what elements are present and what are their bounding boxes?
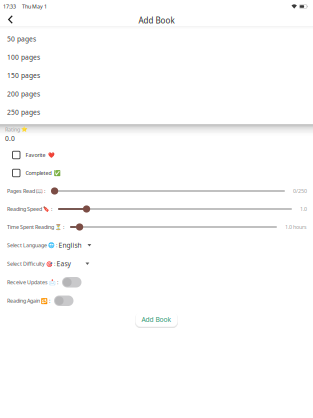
button[interactable]: Back: [0, 13, 22, 26]
staticText: Time Spent Reading ⏳ :: [7, 223, 64, 231]
button[interactable]: Easy: [55, 256, 89, 271]
staticText: 200 pages: [7, 89, 40, 98]
staticText: Select Language 🌐 :: [7, 242, 57, 249]
staticText: Add Book: [138, 15, 174, 26]
button[interactable]: 150 pages: [0, 66, 313, 85]
staticText: ❤️: [47, 152, 54, 158]
staticText: 50 pages: [7, 34, 36, 43]
staticText: Reading Again 🔁 :: [7, 297, 50, 304]
button[interactable]: Reading Again 🔁 :: [50, 295, 73, 306]
staticText: ✅: [53, 170, 60, 176]
button[interactable]: 100 pages: [0, 48, 313, 66]
staticText: Completed: [25, 169, 51, 177]
staticText: English: [58, 241, 81, 250]
staticText: Thu May 1: [22, 3, 47, 10]
button[interactable]: Add Book: [134, 311, 178, 328]
staticText: 0.0: [5, 134, 15, 143]
button[interactable]: 200 pages: [0, 85, 313, 103]
button[interactable]: Completed: [0, 164, 313, 182]
staticText: Rating ⭐: [5, 126, 28, 133]
staticText: Pages Read 📖 :: [7, 187, 45, 195]
staticText: Add Book: [141, 315, 171, 324]
staticText: 250 pages: [7, 108, 40, 117]
staticText: Select Difficulty 🎯 :: [7, 260, 55, 267]
button[interactable]: 50 pages: [0, 30, 313, 48]
staticText: 17:33: [3, 3, 16, 10]
button[interactable]: Favorite: [0, 146, 313, 164]
staticText: 150 pages: [7, 71, 40, 80]
button[interactable]: English: [57, 238, 91, 253]
staticText: 0/250: [293, 187, 307, 195]
staticText: Receive Updates 📩 :: [7, 279, 58, 286]
staticText: 1.0 hours: [285, 223, 307, 231]
staticText: Easy: [56, 259, 70, 268]
button[interactable]: Receive Updates 📩 :: [58, 277, 81, 287]
staticText: 100 pages: [7, 53, 40, 62]
staticText: Favorite: [25, 151, 45, 159]
button[interactable]: 250 pages: [0, 103, 313, 121]
staticText: 1.0: [300, 205, 307, 213]
staticText: Reading Speed 🔖 :: [7, 205, 52, 213]
